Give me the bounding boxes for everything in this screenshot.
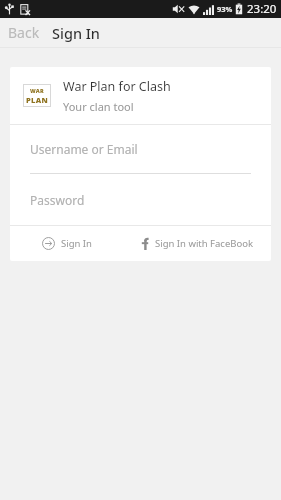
staticText: Username or Email: [30, 141, 138, 157]
button[interactable]: Sign In with FaceBook: [123, 226, 271, 261]
button[interactable]: Username or Email: [10, 125, 271, 173]
other: Sign In with FaceBook: [141, 237, 149, 250]
button[interactable]: Password: [10, 174, 271, 225]
button[interactable]: Back: [0, 18, 48, 47]
staticText: Sign In: [61, 237, 92, 250]
staticText: 23:20: [247, 1, 277, 17]
staticText: War Plan for Clash: [63, 78, 171, 95]
staticText: 93%: [217, 4, 233, 14]
staticText: Your clan tool: [63, 99, 134, 114]
button[interactable]: Sign In: [10, 226, 123, 261]
other: Sign In: [42, 237, 55, 250]
staticText: Password: [30, 192, 85, 208]
staticText: Back: [8, 23, 40, 42]
staticText: Sign In: [52, 23, 100, 43]
staticText: WAR: [30, 87, 45, 94]
staticText: Sign In with FaceBook: [155, 237, 254, 250]
staticText: PLAN: [26, 95, 49, 105]
